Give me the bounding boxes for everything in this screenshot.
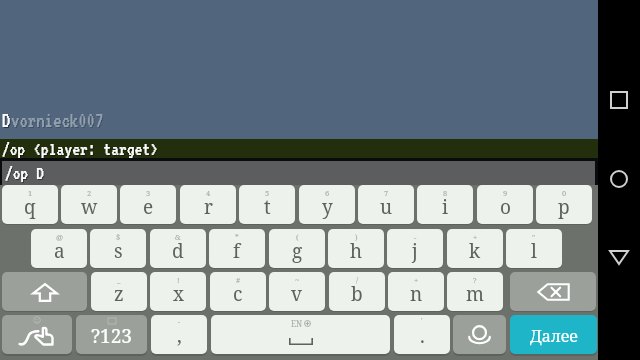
staticText: 8 (443, 188, 448, 198)
staticText: v (291, 281, 303, 307)
button[interactable]: Shift (2, 272, 87, 311)
staticText: e (143, 194, 154, 220)
staticText: 0 (562, 188, 567, 198)
button[interactable]: Voice input (453, 315, 506, 354)
staticText: 5 (265, 188, 270, 198)
button[interactable]: a (31, 229, 87, 268)
staticText: f (233, 238, 241, 264)
button[interactable]: u (358, 185, 414, 224)
staticText: + (473, 232, 478, 242)
staticText: q (24, 194, 36, 220)
staticText: # (236, 275, 241, 285)
staticText: /op D (5, 163, 45, 183)
staticText: 6 (325, 188, 330, 198)
staticText: . (420, 323, 425, 349)
button[interactable]: x (150, 272, 206, 311)
button[interactable]: q (2, 185, 58, 224)
staticText: k (469, 238, 481, 264)
staticText: c (233, 281, 243, 307)
staticText: + (414, 275, 419, 285)
button[interactable]: n (388, 272, 444, 311)
staticText: vornieck007 (12, 111, 105, 132)
staticText: x (173, 281, 184, 307)
staticText: ? (473, 275, 477, 285)
staticText: ( (296, 232, 299, 242)
button[interactable]: h (328, 229, 384, 268)
button[interactable]: r (180, 185, 236, 224)
staticText: l (531, 238, 537, 264)
staticText: $ (116, 232, 121, 242)
staticText: 9 (503, 188, 508, 198)
staticText: 3 (146, 188, 151, 198)
button[interactable]: d (150, 229, 206, 268)
staticText: b (351, 281, 363, 307)
staticText: h (350, 238, 363, 264)
staticText: EN (291, 318, 303, 329)
button[interactable]: y (299, 185, 355, 224)
button[interactable]: Handwriting input (2, 315, 72, 354)
button[interactable]: b (329, 272, 385, 311)
button[interactable]: s (90, 229, 146, 268)
staticText: , (177, 323, 182, 349)
button[interactable]: Back (598, 235, 640, 279)
staticText: Далее (530, 325, 578, 347)
staticText: j (412, 238, 418, 264)
staticText: 1 (28, 188, 33, 198)
staticText: i (442, 194, 449, 220)
button[interactable]: l (506, 229, 562, 268)
staticText: s (114, 238, 123, 264)
staticText: z (114, 281, 124, 307)
staticText: ?123 (91, 323, 132, 349)
button[interactable]: Далее (510, 315, 597, 354)
staticText: y (322, 194, 333, 220)
staticText: p (558, 194, 570, 220)
staticText: & (175, 232, 181, 242)
button[interactable]: i (417, 185, 473, 224)
staticText: 2 (87, 188, 92, 198)
button[interactable]: p (536, 185, 592, 224)
staticText: - (178, 317, 181, 327)
staticText: /op <player: target> (3, 140, 160, 159)
staticText: t (264, 194, 271, 220)
staticText: D (2, 110, 11, 131)
button[interactable]: e (120, 185, 176, 224)
button[interactable]: j (387, 229, 443, 268)
staticText: D (3, 111, 12, 132)
button[interactable]: g (269, 229, 325, 268)
button[interactable]: Backspace (510, 272, 596, 311)
staticText: a (54, 238, 65, 264)
button[interactable]: w (61, 185, 117, 224)
button[interactable]: c (210, 272, 266, 311)
button[interactable]: Space (211, 315, 390, 354)
staticText: ! (177, 275, 180, 285)
button[interactable]: z (91, 272, 147, 311)
staticText: @ (56, 232, 63, 242)
staticText: r (204, 194, 213, 220)
button[interactable]: m (447, 272, 503, 311)
button[interactable]: Comma (151, 315, 207, 354)
staticText: d (172, 238, 184, 264)
staticText: ' (421, 316, 423, 326)
staticText: m (466, 281, 484, 307)
staticText: ) (355, 232, 358, 242)
button[interactable]: Period (394, 315, 450, 354)
staticText: o (500, 194, 511, 220)
button[interactable]: t (239, 185, 295, 224)
button[interactable]: f (209, 229, 265, 268)
button[interactable]: k (447, 229, 503, 268)
button[interactable]: v (269, 272, 325, 311)
button[interactable]: o (477, 185, 533, 224)
staticText: /op <player: target> (2, 139, 159, 158)
staticText: * (235, 232, 239, 242)
staticText: n (410, 281, 423, 307)
staticText: g (292, 238, 303, 264)
button[interactable]: Home (598, 157, 640, 201)
staticText: /op D (6, 164, 46, 184)
staticText: vornieck007 (11, 110, 104, 131)
button[interactable]: Recents (598, 78, 640, 122)
button[interactable]: Symbols (76, 315, 147, 354)
staticText: _ (117, 275, 121, 285)
staticText: " (532, 232, 536, 242)
staticText: / (356, 275, 359, 285)
staticText: 7 (384, 188, 389, 198)
